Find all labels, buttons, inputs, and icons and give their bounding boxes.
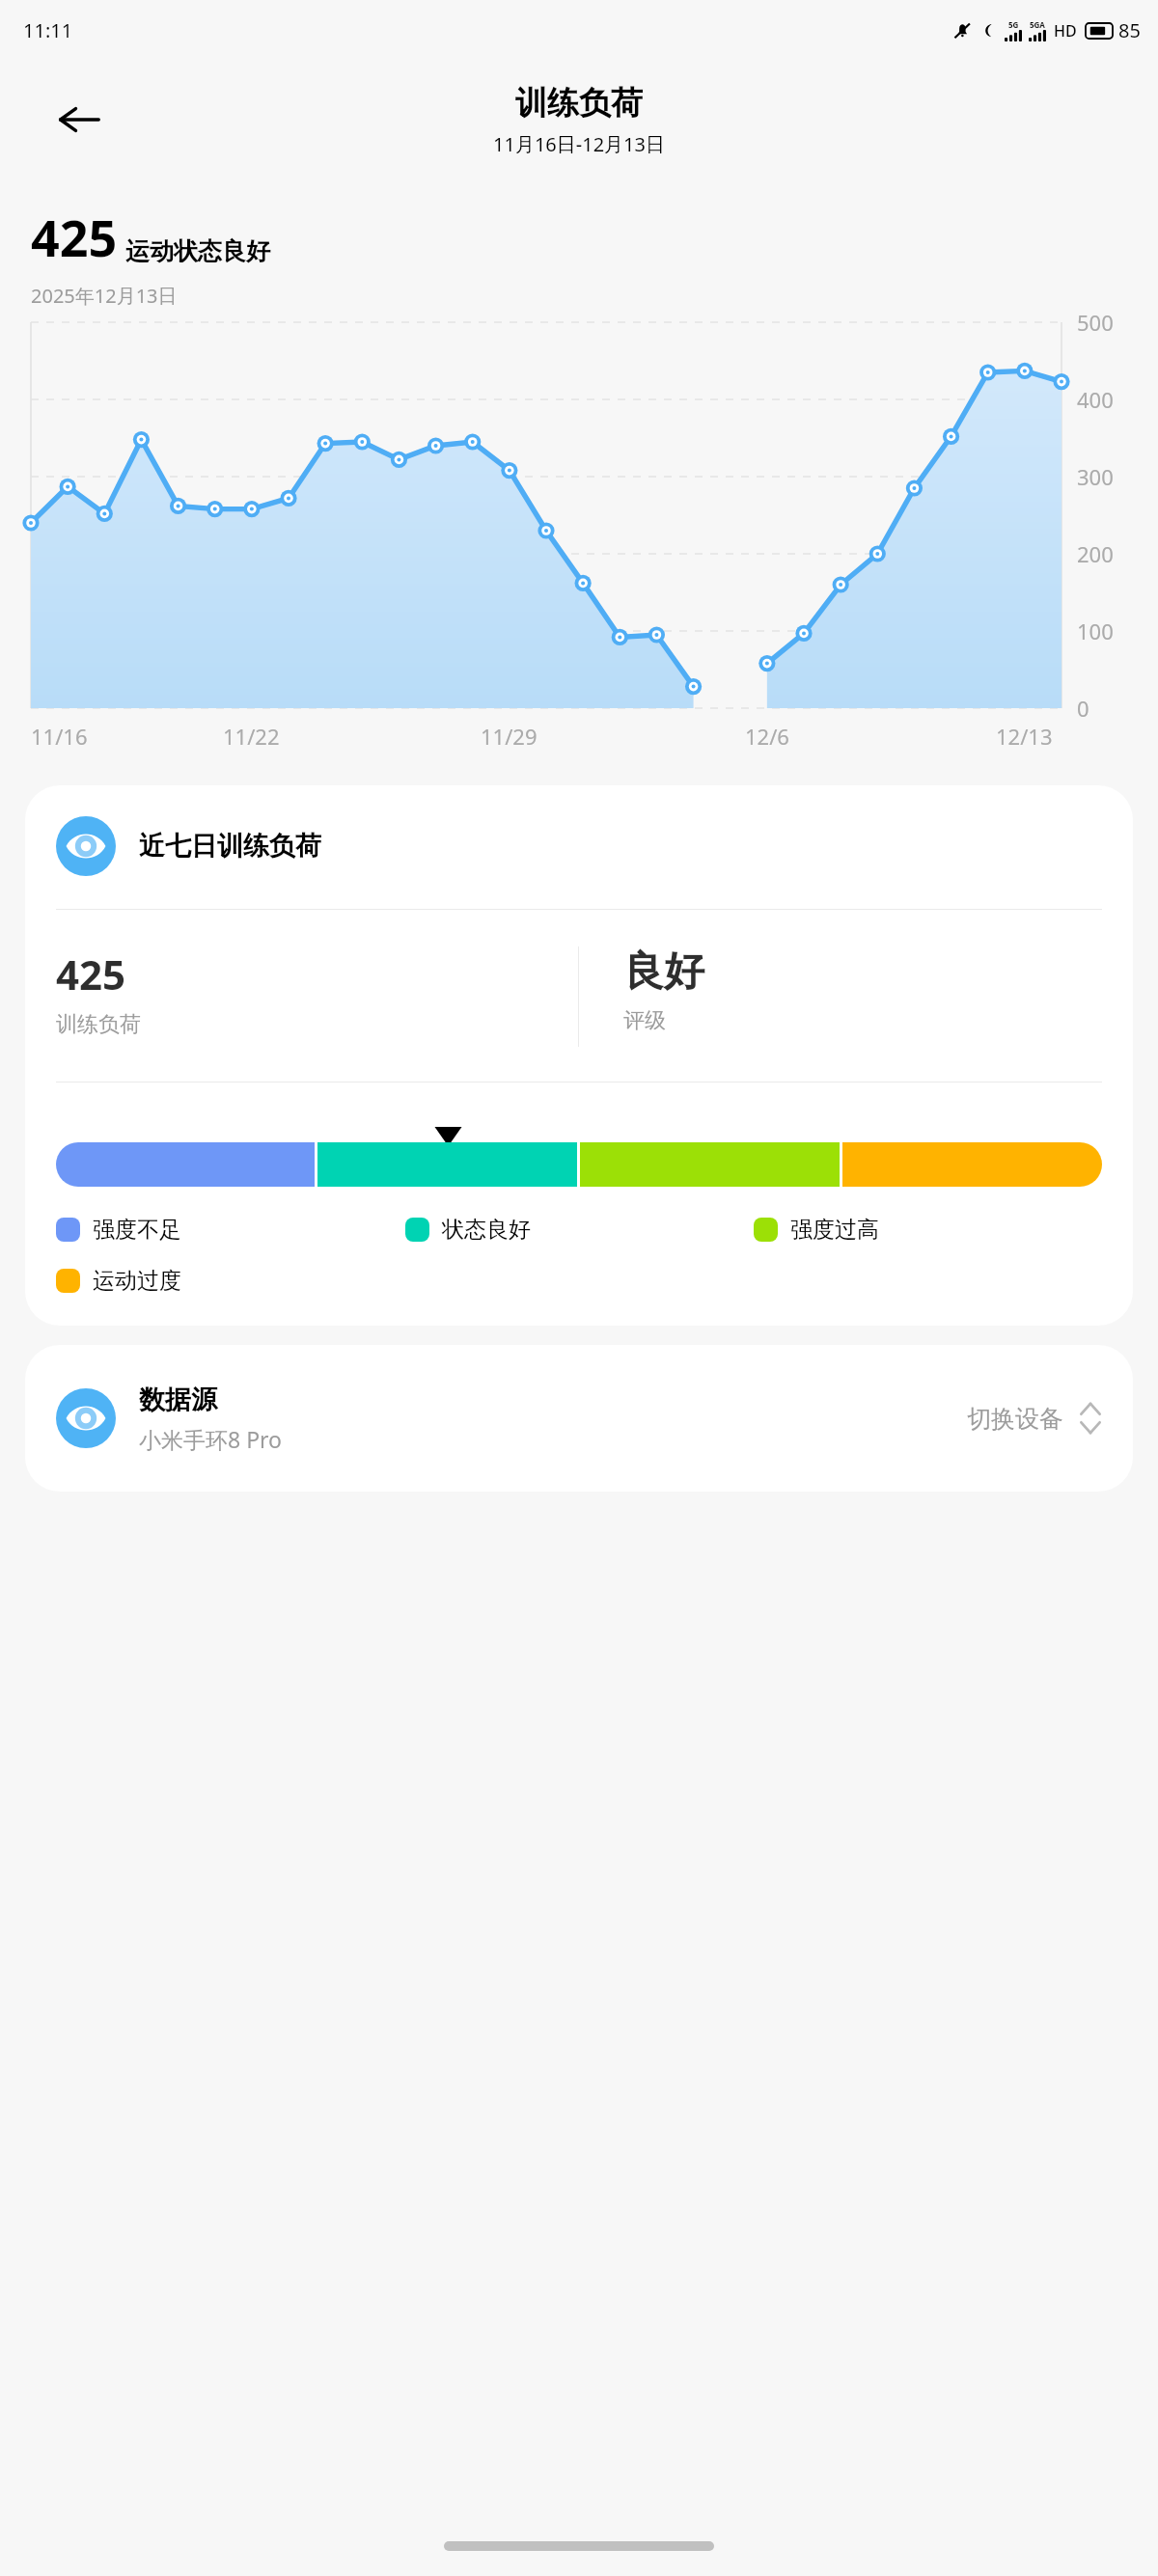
staticText: 11/22: [223, 722, 280, 751]
staticText: 12/13: [996, 722, 1053, 751]
staticText: 强度不足: [93, 1216, 181, 1244]
button[interactable]: 切换设备: [967, 1393, 1102, 1443]
button[interactable]: 数据源: [25, 1345, 1133, 1492]
staticText: 12/6: [745, 722, 789, 751]
staticText: 5GA: [1030, 19, 1045, 30]
staticText: HD: [1054, 20, 1077, 41]
staticText: 200: [1077, 539, 1114, 568]
staticText: 2025年12月13日: [31, 283, 178, 309]
staticText: 良好: [623, 946, 704, 998]
staticText: 状态良好: [442, 1216, 531, 1244]
staticText: 切换设备: [967, 1404, 1063, 1434]
staticText: 100: [1077, 617, 1114, 645]
staticText: 训练负荷: [515, 83, 643, 123]
staticText: 11:11: [23, 17, 73, 43]
staticText: 近七日训练负荷: [139, 830, 321, 863]
staticText: 数据源: [139, 1384, 217, 1416]
staticText: 425: [31, 203, 118, 271]
staticText: 训练负荷: [56, 1011, 141, 1038]
staticText: 评级: [623, 1007, 666, 1034]
staticText: 运动状态良好: [125, 236, 270, 266]
button[interactable]: Back: [50, 91, 108, 149]
staticText: 11月16日-12月13日: [493, 131, 665, 157]
staticText: 小米手环8 Pro: [139, 1424, 283, 1454]
staticText: 500: [1077, 308, 1114, 337]
staticText: 11/29: [481, 722, 538, 751]
staticText: 425: [56, 946, 126, 1001]
staticText: 11/16: [31, 722, 88, 751]
staticText: 300: [1077, 462, 1114, 491]
staticText: 85: [1118, 17, 1141, 43]
button[interactable]: 近七日训练负荷: [25, 785, 1133, 1326]
staticText: 0: [1077, 694, 1089, 723]
staticText: 5G: [1008, 19, 1019, 30]
staticText: 400: [1077, 385, 1114, 414]
staticText: 强度过高: [790, 1216, 879, 1244]
staticText: 运动过度: [93, 1267, 181, 1295]
